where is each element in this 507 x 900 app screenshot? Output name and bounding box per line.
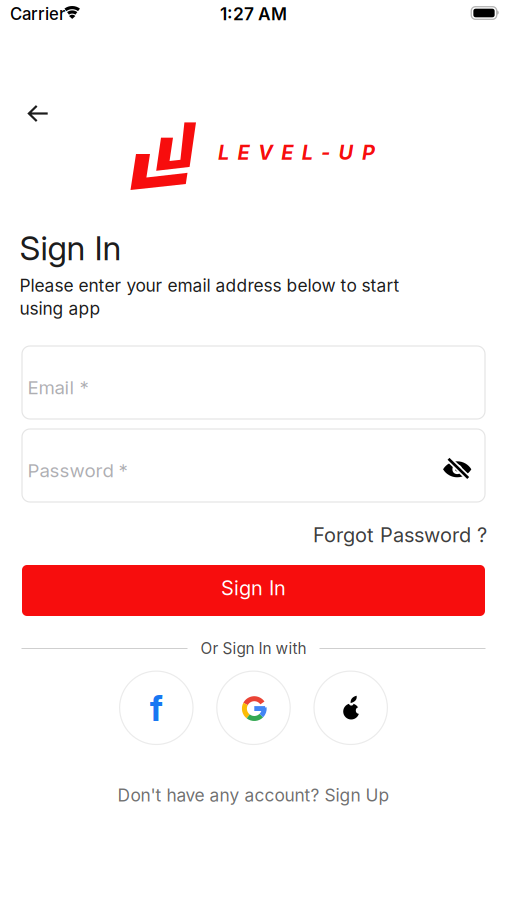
staticText: Forgot Password ? [313,523,487,547]
button[interactable]: Email [22,346,485,419]
staticText: - [321,140,330,165]
staticText: Sign In [221,576,286,600]
button[interactable]: Forgot Password ? [313,523,487,547]
button[interactable]: Sign in with Apple [314,671,387,744]
staticText: V [258,140,273,165]
staticText: Don't have any account? [117,785,319,805]
staticText: P [362,140,375,165]
staticText: E [281,140,293,165]
button[interactable]: Password [22,429,485,502]
button[interactable]: Sign in with Google [217,671,290,744]
button[interactable]: Sign Up [324,785,389,805]
staticText: Sign In [19,228,121,268]
staticText: E [237,140,249,165]
staticText: U [338,140,353,165]
staticText: Password * [27,459,127,481]
button[interactable]: Show password [442,456,472,482]
staticText: Carrier [10,4,65,24]
button[interactable]: Sign In [22,565,485,616]
staticText: Email * [27,376,88,398]
staticText: Or Sign In with [200,639,306,658]
staticText: f [150,687,163,729]
staticText: Sign Up [324,785,389,805]
staticText: L [302,140,313,165]
button[interactable]: Sign in with Facebook [120,671,193,744]
staticText: 1:27 AM [220,4,287,24]
staticText: L [218,140,229,165]
staticText: Please enter your email address below to… [19,275,399,319]
button[interactable]: Back [28,105,49,121]
